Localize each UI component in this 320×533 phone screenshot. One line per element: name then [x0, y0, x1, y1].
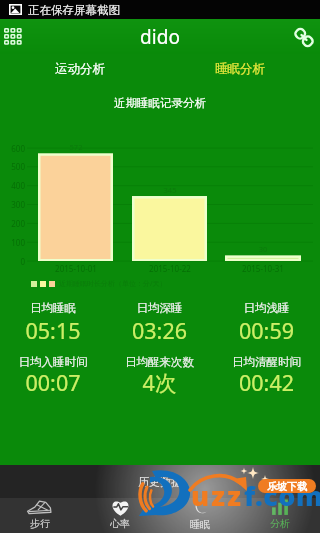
staticText: 近期睡眠时长分析（单位：分/天）	[59, 279, 167, 289]
staticText: 2015-10-01	[46, 263, 106, 274]
button[interactable]: 心率	[80, 495, 160, 533]
staticText: 300	[1, 199, 25, 210]
button[interactable]: 睡眠分析	[160, 56, 320, 82]
staticText: 日均浅睡	[213, 301, 320, 315]
staticText: 运动分析	[55, 61, 105, 77]
staticText: 日均深睡	[106, 301, 213, 315]
staticText: 00:59	[213, 316, 320, 345]
staticText: 05:15	[0, 316, 106, 345]
staticText: uzz	[191, 477, 244, 514]
staticText: 睡眠分析	[215, 61, 265, 77]
button[interactable]: 运动分析	[0, 56, 160, 82]
staticText: 日均清醒时间	[213, 355, 320, 369]
staticText: 乐坡下载	[267, 480, 307, 493]
staticText: 100	[1, 237, 25, 248]
staticText: 心率	[110, 517, 130, 530]
button[interactable]: 步行	[0, 495, 80, 533]
staticText: 345	[150, 185, 190, 195]
staticText: 00:42	[213, 368, 320, 397]
staticText: 日均醒来次数	[106, 355, 213, 369]
staticText: 步行	[30, 517, 50, 530]
staticText: 4次	[106, 368, 213, 397]
staticText: 近期睡眠记录分析	[0, 96, 320, 110]
staticText: 正在保存屏幕截图	[28, 3, 120, 17]
staticText: 500	[1, 161, 25, 172]
staticText: f.com	[244, 477, 320, 514]
staticText: 分析	[270, 517, 290, 530]
button[interactable]: Link	[290, 23, 318, 51]
staticText: 睡眠	[190, 518, 210, 531]
button[interactable]: 历史数据	[0, 465, 320, 498]
staticText: 2015-10-31	[233, 263, 293, 274]
button[interactable]: 分析	[240, 495, 320, 533]
staticText: 历史数据	[138, 475, 182, 489]
staticText: 03:26	[106, 316, 213, 345]
staticText: 日均入睡时间	[0, 355, 106, 369]
button[interactable]: 睡眠	[160, 495, 240, 533]
staticText: 00:07	[0, 368, 106, 397]
staticText: 日均睡眠	[0, 301, 106, 315]
staticText: 0	[1, 256, 25, 267]
staticText: 200	[1, 218, 25, 229]
staticText: dido	[0, 24, 320, 50]
staticText: 2015-10-22	[140, 263, 200, 274]
button[interactable]: Menu	[0, 23, 27, 50]
staticText: 400	[1, 180, 25, 191]
staticText: 600	[1, 143, 25, 154]
